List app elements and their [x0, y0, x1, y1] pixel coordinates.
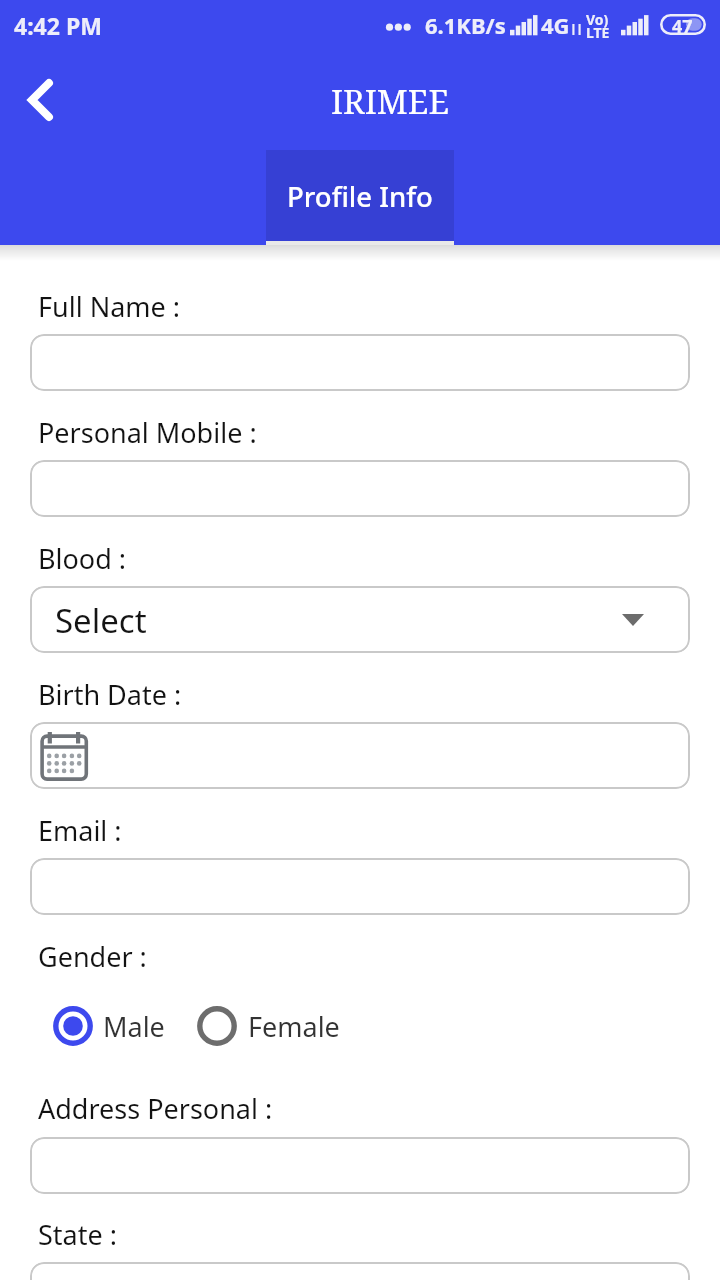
staticText: Vo): [586, 10, 609, 29]
button[interactable]: Pick birth date: [30, 722, 690, 789]
staticText: Full Name :: [38, 288, 181, 325]
staticText: Personal Mobile :: [38, 414, 257, 451]
staticText: Blood :: [38, 540, 127, 577]
button[interactable]: Full Name input: [30, 334, 690, 391]
staticText: Male: [103, 1008, 165, 1045]
button[interactable]: Back: [6, 64, 74, 136]
staticText: 6.1KB/s: [425, 10, 506, 40]
staticText: IRIMEE: [331, 79, 449, 124]
button[interactable]: Select: [30, 586, 690, 653]
staticText: Address Personal :: [38, 1090, 273, 1127]
staticText: Email :: [38, 812, 122, 849]
button[interactable]: State input: [30, 1262, 690, 1280]
staticText: Birth Date :: [38, 676, 182, 713]
staticText: LTE: [586, 23, 610, 42]
button[interactable]: Address Personal input: [30, 1137, 690, 1194]
button[interactable]: Personal Mobile input: [30, 460, 690, 517]
staticText: Gender :: [38, 938, 147, 975]
staticText: 47: [672, 14, 693, 35]
staticText: Profile Info: [287, 178, 433, 215]
staticText: Female: [248, 1008, 340, 1045]
button[interactable]: Profile Info: [266, 150, 454, 245]
button[interactable]: Email input: [30, 858, 690, 915]
button[interactable]: Female: [195, 1005, 340, 1047]
staticText: 4G: [541, 10, 570, 40]
button[interactable]: Male: [51, 1005, 165, 1047]
staticText: 4:42 PM: [14, 10, 102, 41]
staticText: State :: [38, 1216, 117, 1253]
staticText: Select: [55, 598, 147, 643]
